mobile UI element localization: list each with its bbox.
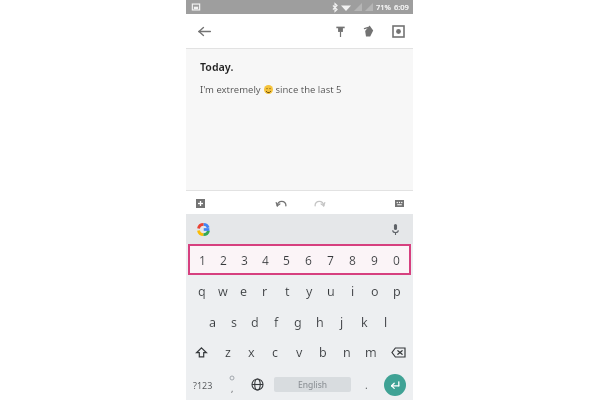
staticText: 6 xyxy=(305,252,312,268)
button[interactable]: Comma xyxy=(220,369,244,400)
staticText: u xyxy=(327,283,335,300)
button[interactable]: l xyxy=(375,308,397,336)
button[interactable]: Undo xyxy=(272,194,290,212)
button[interactable]: Back xyxy=(192,19,216,43)
staticText: g xyxy=(294,314,302,331)
button[interactable]: q xyxy=(191,277,212,305)
staticText: 2 xyxy=(220,252,227,268)
button[interactable]: i xyxy=(342,277,364,305)
button[interactable]: k xyxy=(353,308,375,336)
staticText: c xyxy=(272,344,279,361)
staticText: x xyxy=(248,344,255,361)
staticText: w xyxy=(218,283,228,300)
button[interactable]: ?123 xyxy=(186,369,220,400)
button[interactable]: 0 xyxy=(385,246,407,274)
staticText: a xyxy=(209,314,217,331)
button[interactable]: b xyxy=(311,337,335,368)
button[interactable]: u xyxy=(320,277,342,305)
staticText: i xyxy=(351,283,355,300)
button[interactable]: English xyxy=(274,377,351,392)
button[interactable]: p xyxy=(386,277,408,305)
button[interactable]: m xyxy=(359,337,383,368)
staticText: 71% xyxy=(376,2,391,12)
button[interactable]: r xyxy=(254,277,276,305)
staticText: I'm extremely xyxy=(200,83,264,96)
staticText: n xyxy=(343,344,351,361)
staticText: q xyxy=(198,283,206,300)
staticText: s xyxy=(231,314,237,331)
button[interactable]: 2 xyxy=(213,246,234,274)
staticText: l xyxy=(384,314,388,331)
staticText: 9 xyxy=(371,252,378,268)
button[interactable]: e xyxy=(233,277,254,305)
staticText: 0 xyxy=(393,252,400,268)
button[interactable]: a xyxy=(202,308,223,336)
staticText: r xyxy=(262,283,268,300)
button[interactable]: 3 xyxy=(234,246,255,274)
staticText: e xyxy=(240,283,248,300)
staticText: t xyxy=(285,283,290,300)
staticText: p xyxy=(393,283,401,300)
staticText: 8 xyxy=(349,252,356,268)
staticText: 6:09 xyxy=(394,2,409,12)
button[interactable]: 1 xyxy=(192,246,213,274)
button[interactable]: w xyxy=(212,277,233,305)
button[interactable]: More options xyxy=(390,194,408,212)
staticText: h xyxy=(316,314,324,331)
button[interactable]: t xyxy=(276,277,298,305)
button[interactable]: 4 xyxy=(255,246,276,274)
staticText: 7 xyxy=(327,252,334,268)
staticText: 5 xyxy=(283,252,290,268)
staticText: d xyxy=(251,314,259,331)
staticText: English xyxy=(298,379,327,391)
button[interactable]: Period xyxy=(355,369,377,400)
button[interactable]: Pin xyxy=(330,21,350,41)
staticText: , xyxy=(231,382,234,394)
button[interactable]: Archive xyxy=(388,21,408,41)
button[interactable]: Add xyxy=(191,194,209,212)
button[interactable]: Change color xyxy=(359,21,379,41)
button[interactable]: s xyxy=(223,308,244,336)
button[interactable]: v xyxy=(287,337,311,368)
button[interactable]: x xyxy=(239,337,263,368)
staticText: Today. xyxy=(200,60,234,74)
button[interactable]: 9 xyxy=(363,246,385,274)
button[interactable]: Shift xyxy=(186,337,216,368)
staticText: z xyxy=(225,344,231,361)
button[interactable]: z xyxy=(216,337,239,368)
staticText: 3 xyxy=(241,252,248,268)
button[interactable]: Redo xyxy=(310,194,328,212)
staticText: 1 xyxy=(199,252,206,268)
button[interactable]: Google search xyxy=(193,219,213,239)
button[interactable]: o xyxy=(364,277,386,305)
staticText: y xyxy=(306,283,313,300)
button[interactable]: c xyxy=(263,337,287,368)
button[interactable]: f xyxy=(265,308,287,336)
staticText: . xyxy=(365,378,368,392)
button[interactable]: 8 xyxy=(341,246,363,274)
button[interactable]: n xyxy=(335,337,359,368)
button[interactable]: j xyxy=(331,308,353,336)
staticText: k xyxy=(361,314,368,331)
button[interactable]: h xyxy=(309,308,331,336)
button[interactable]: y xyxy=(298,277,320,305)
button[interactable]: g xyxy=(287,308,309,336)
staticText: v xyxy=(296,344,303,361)
staticText: since the last 5 xyxy=(273,83,342,96)
button[interactable]: d xyxy=(244,308,265,336)
button[interactable]: Backspace xyxy=(383,337,413,368)
staticText: o xyxy=(371,283,379,300)
button[interactable]: 7 xyxy=(319,246,341,274)
staticText: f xyxy=(274,314,279,331)
staticText: b xyxy=(319,344,327,361)
button[interactable]: Enter xyxy=(377,369,413,400)
button[interactable]: Voice input xyxy=(385,219,405,239)
button[interactable]: Change language xyxy=(244,369,270,400)
staticText: ?123 xyxy=(193,379,213,391)
button[interactable]: 6 xyxy=(297,246,319,274)
button[interactable]: 5 xyxy=(276,246,297,274)
staticText: m xyxy=(365,344,377,361)
staticText: 4 xyxy=(262,252,269,268)
staticText: j xyxy=(340,314,344,331)
